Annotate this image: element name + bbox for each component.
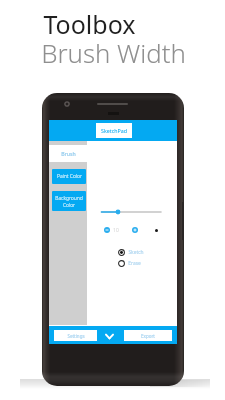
staticText: Export (141, 333, 155, 339)
button[interactable]: More options (104, 331, 115, 342)
button[interactable]: Settings (54, 330, 97, 341)
staticText: Toolbox (43, 7, 136, 41)
staticText: Sketch (128, 249, 144, 256)
button[interactable]: Brush (49, 145, 87, 162)
button[interactable]: Background Color (52, 191, 86, 211)
staticText: 10 (113, 227, 119, 234)
staticText: Erase (128, 260, 141, 267)
staticText: SketchPad (101, 127, 127, 134)
staticText: Brush Width (41, 35, 186, 70)
button[interactable]: Decrease (104, 227, 110, 233)
staticText: Paint Color (57, 173, 82, 180)
button[interactable]: Sketch (118, 249, 144, 256)
button[interactable]: Paint Color (52, 169, 86, 184)
button[interactable]: Increase (132, 227, 138, 233)
staticText: Settings (67, 333, 85, 339)
staticText: Brush (61, 150, 76, 157)
button[interactable]: SketchPad (96, 123, 132, 138)
staticText: Background Color (55, 195, 83, 208)
button[interactable]: Export (124, 330, 172, 341)
button[interactable]: Erase (118, 260, 141, 267)
